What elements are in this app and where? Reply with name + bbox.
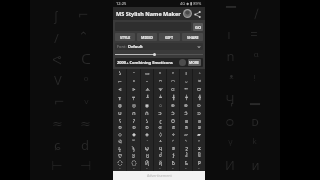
button[interactable]: ᵛ <box>154 69 166 77</box>
button[interactable]: ᘐ <box>113 124 126 131</box>
button[interactable]: Ҍ <box>167 159 179 166</box>
button[interactable]: ı <box>180 69 192 77</box>
button[interactable]: STYLE <box>115 33 135 41</box>
button[interactable]: ᐜ <box>127 138 140 145</box>
button[interactable]: ც <box>141 152 153 159</box>
button[interactable]: ᵕ <box>127 166 140 171</box>
button[interactable]: ᑑ <box>167 109 179 117</box>
button[interactable]: ◇ <box>113 131 126 138</box>
button[interactable]: ҈ <box>113 159 126 166</box>
button[interactable]: ᵕ <box>113 166 126 171</box>
button[interactable]: ᵒ <box>127 77 140 85</box>
button[interactable]: Profile <box>183 9 192 18</box>
button[interactable]: ▱ <box>180 131 192 138</box>
button[interactable]: ◍ <box>113 101 126 109</box>
button[interactable]: ᕮ <box>167 85 179 93</box>
button[interactable]: ᐛ <box>113 138 126 145</box>
button[interactable]: ▭ <box>141 69 153 77</box>
button[interactable]: ϥ <box>154 145 166 152</box>
button[interactable]: ᵔ <box>127 69 140 77</box>
button[interactable]: SHARE <box>182 33 203 41</box>
button[interactable]: ᗕ <box>113 85 126 93</box>
button[interactable]: ⊕ <box>167 101 179 109</box>
button[interactable]: ╨ <box>141 93 153 101</box>
button[interactable]: ҉ <box>127 159 140 166</box>
button[interactable]: GO <box>193 23 203 31</box>
button[interactable]: ყ <box>127 152 140 159</box>
button[interactable]: ᵕ <box>180 166 192 171</box>
button[interactable]: MORE <box>188 59 201 66</box>
button[interactable]: ᵕ <box>141 77 153 85</box>
button[interactable]: ◉ <box>141 101 153 109</box>
button[interactable]: ◈ <box>141 131 153 138</box>
button[interactable]: ჰ <box>180 152 192 159</box>
button[interactable]: ᘑ <box>127 124 140 131</box>
button[interactable]: ϫ <box>193 145 205 152</box>
button[interactable]: ╪ <box>180 93 192 101</box>
button[interactable]: ᐡ <box>193 138 205 145</box>
button[interactable]: ᑌ <box>113 109 126 117</box>
button[interactable]: ʚ <box>193 117 205 124</box>
button[interactable]: ⊙ <box>193 101 205 109</box>
button[interactable]: Share <box>192 9 202 19</box>
button[interactable]: ⌣ <box>180 77 192 85</box>
button[interactable]: Info <box>179 59 186 66</box>
button[interactable]: ძ <box>154 152 166 159</box>
button[interactable]: ᘒ <box>141 124 153 131</box>
button[interactable]: ϡ <box>127 145 140 152</box>
button[interactable]: ᵕ <box>167 166 179 171</box>
button[interactable]: ᵕ <box>141 166 153 171</box>
button[interactable]: ᑎ <box>127 109 140 117</box>
button[interactable]: ◦ <box>193 69 205 77</box>
button[interactable]: ᘔ <box>167 124 179 131</box>
button[interactable]: ╬ <box>193 93 205 101</box>
button[interactable]: ʗ <box>154 117 166 124</box>
button[interactable]: GIFT <box>159 33 180 41</box>
button[interactable]: ჱ <box>193 152 205 159</box>
button[interactable]: ʙ <box>180 117 192 124</box>
button[interactable]: ᐞ <box>154 138 166 145</box>
button[interactable]: ╧ <box>154 93 166 101</box>
button[interactable]: ╤ <box>127 93 140 101</box>
button[interactable]: ᵕ <box>154 166 166 171</box>
button[interactable]: ⌐ <box>113 77 126 85</box>
button[interactable]: ◊ <box>154 131 166 138</box>
button[interactable]: ʔ <box>127 117 140 124</box>
button[interactable]: ϧ <box>167 145 179 152</box>
button[interactable]: ⊗ <box>180 101 192 109</box>
button[interactable]: ⋄ <box>167 131 179 138</box>
button[interactable]: ◎ <box>127 101 140 109</box>
button[interactable]: ▰ <box>193 131 205 138</box>
button[interactable]: ᘕ <box>180 124 192 131</box>
button[interactable]: ϣ <box>141 145 153 152</box>
button[interactable]: Ҋ <box>141 159 153 166</box>
button[interactable]: ᕰ <box>193 85 205 93</box>
button[interactable]: ღ <box>113 152 126 159</box>
button[interactable]: ᐝ <box>141 138 153 145</box>
button[interactable]: ҍ <box>180 159 192 166</box>
button[interactable]: ᗑ <box>141 85 153 93</box>
button[interactable]: ◆ <box>127 131 140 138</box>
button[interactable]: ϩ <box>180 145 192 152</box>
button[interactable]: ᵞ <box>167 69 179 77</box>
button[interactable]: ᕯ <box>180 85 192 93</box>
button[interactable]: ᐠ <box>180 138 192 145</box>
button[interactable]: ᘖ <box>193 124 205 131</box>
button[interactable]: ᘓ <box>154 124 166 131</box>
button[interactable]: ᵕ <box>193 166 205 171</box>
button[interactable]: ◌ <box>154 101 166 109</box>
button[interactable]: ᑓ <box>193 109 205 117</box>
button[interactable]: Font: <box>115 43 203 50</box>
button[interactable]: ᑐ <box>154 109 166 117</box>
button[interactable]: MIXED <box>137 33 157 41</box>
button[interactable]: ᗒ <box>127 85 140 93</box>
button[interactable]: ◠ <box>167 77 179 85</box>
button[interactable]: ¤ <box>193 77 205 85</box>
button[interactable]: ʕ <box>113 117 126 124</box>
button[interactable]: ╫ <box>167 93 179 101</box>
button[interactable]: Ҏ <box>193 159 205 166</box>
button[interactable]: ᴖ <box>154 77 166 85</box>
button[interactable]: ᗐ <box>154 85 166 93</box>
button[interactable]: ᑏ <box>141 109 153 117</box>
button[interactable]: ᐟ <box>167 138 179 145</box>
